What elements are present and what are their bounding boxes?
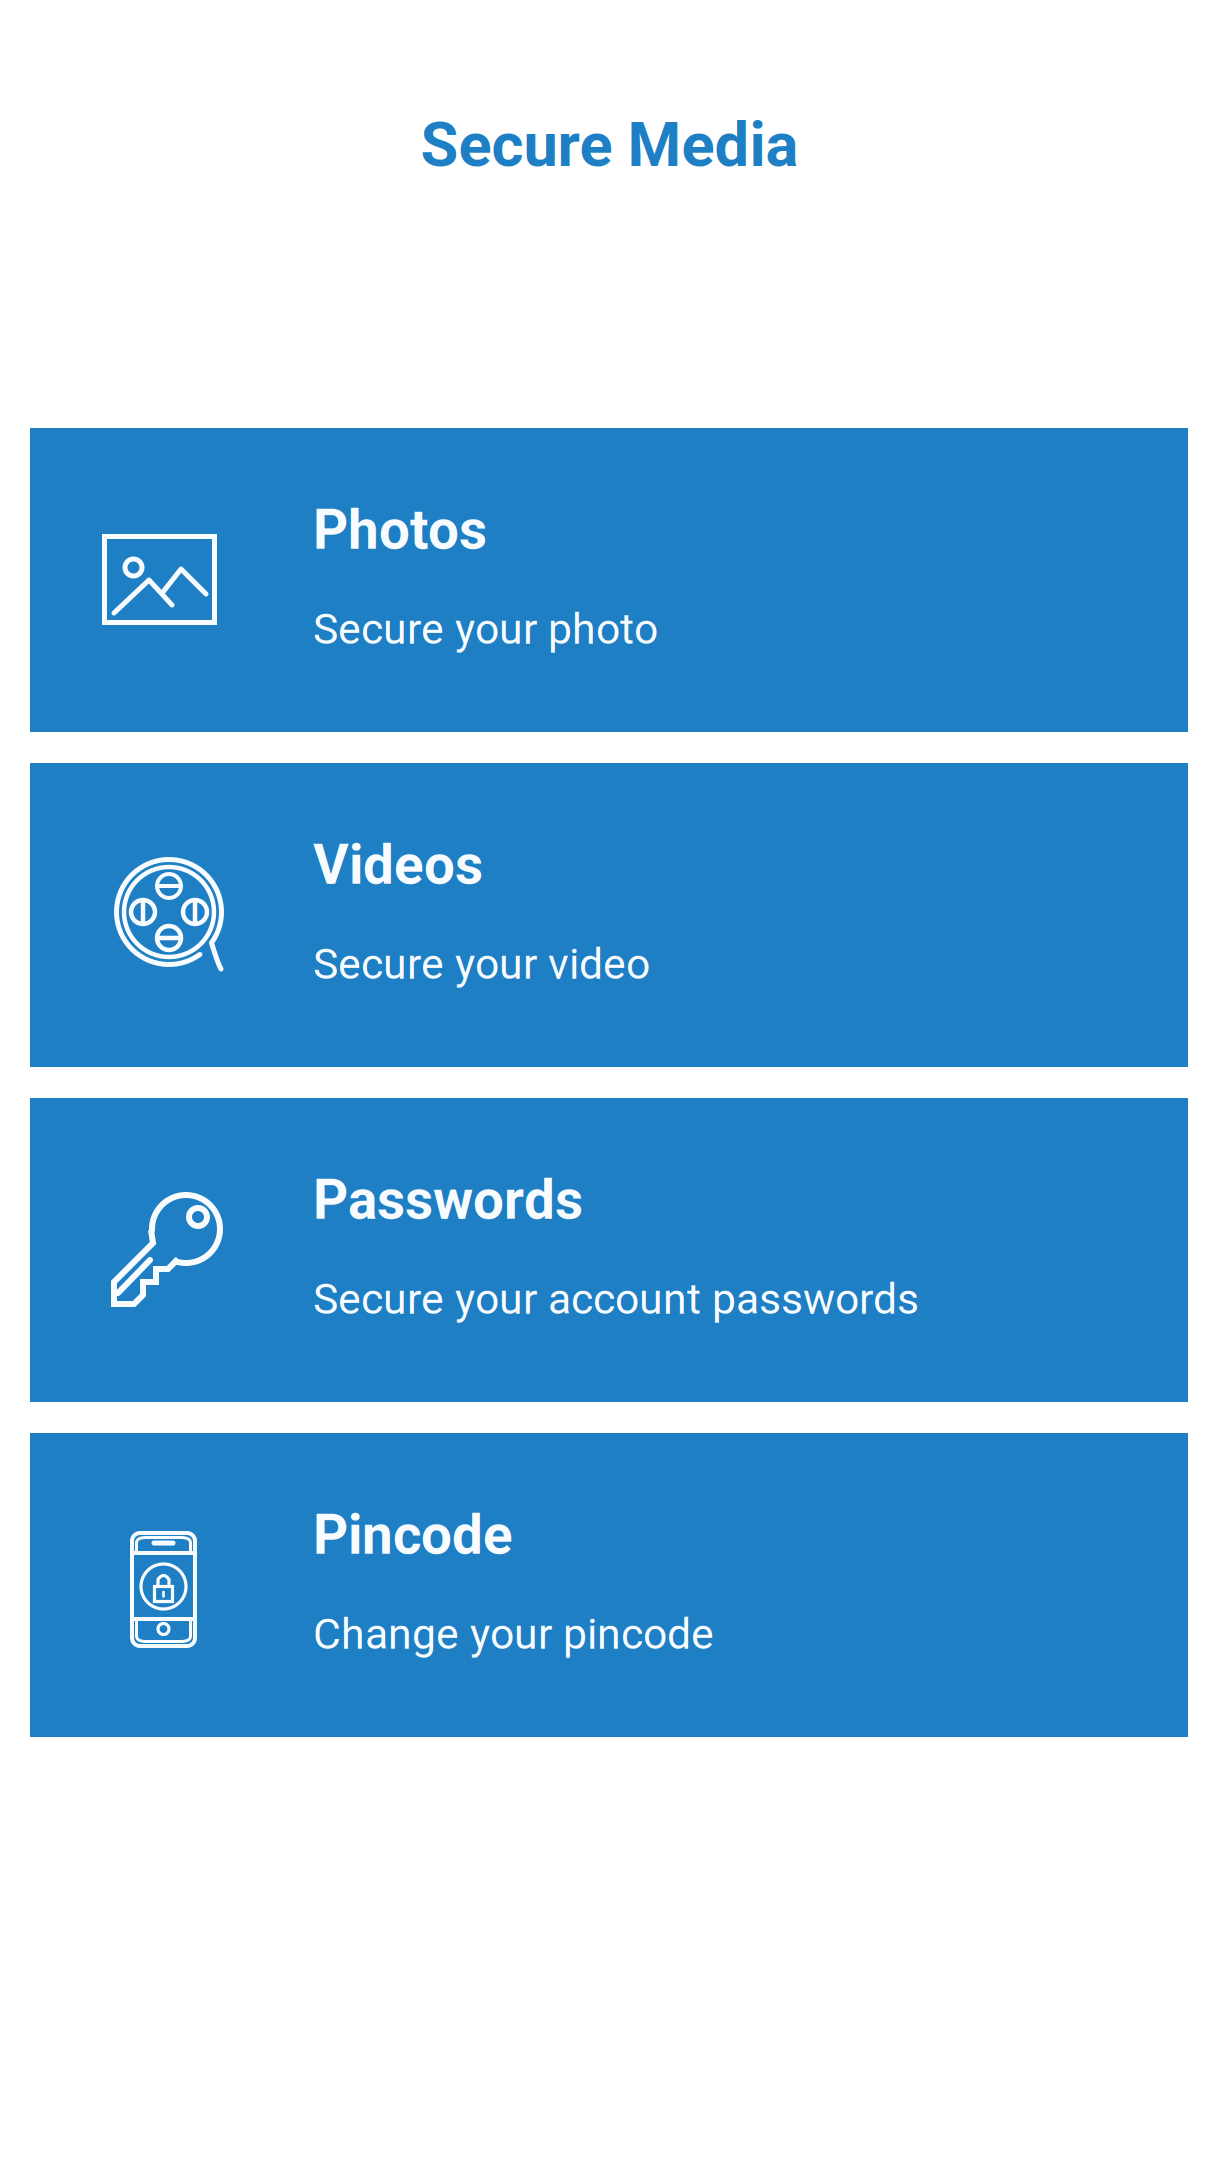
- staticText: Videos: [313, 833, 483, 897]
- staticText: Change your pincode: [313, 1609, 714, 1659]
- button[interactable]: Videos: [30, 763, 1188, 1067]
- staticText: Photos: [313, 498, 487, 562]
- staticText: Secure your video: [313, 939, 650, 989]
- staticText: Secure your account passwords: [313, 1274, 919, 1324]
- staticText: Secure your photo: [313, 604, 658, 654]
- button[interactable]: Passwords: [30, 1098, 1188, 1402]
- button[interactable]: Photos: [30, 428, 1188, 732]
- staticText: Secure Media: [420, 109, 798, 181]
- staticText: Pincode: [313, 1503, 513, 1567]
- staticText: Passwords: [313, 1168, 583, 1232]
- button[interactable]: Pincode: [30, 1433, 1188, 1737]
